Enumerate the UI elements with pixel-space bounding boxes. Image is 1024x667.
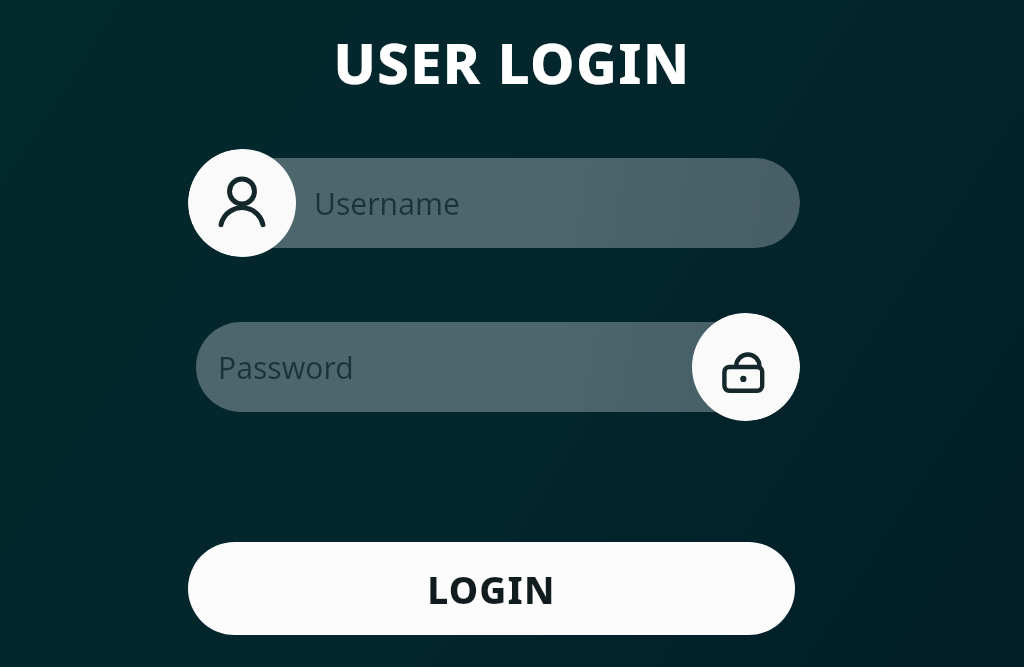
staticText: Password [218,347,354,388]
staticText: USER LOGIN [333,24,691,100]
button[interactable]: Password [188,313,800,421]
staticText: LOGIN [427,564,556,614]
button[interactable]: Username [188,149,800,257]
button[interactable]: LOGIN [188,542,795,635]
staticText: Username [314,183,460,224]
other: Toggle password visibility [692,313,800,421]
